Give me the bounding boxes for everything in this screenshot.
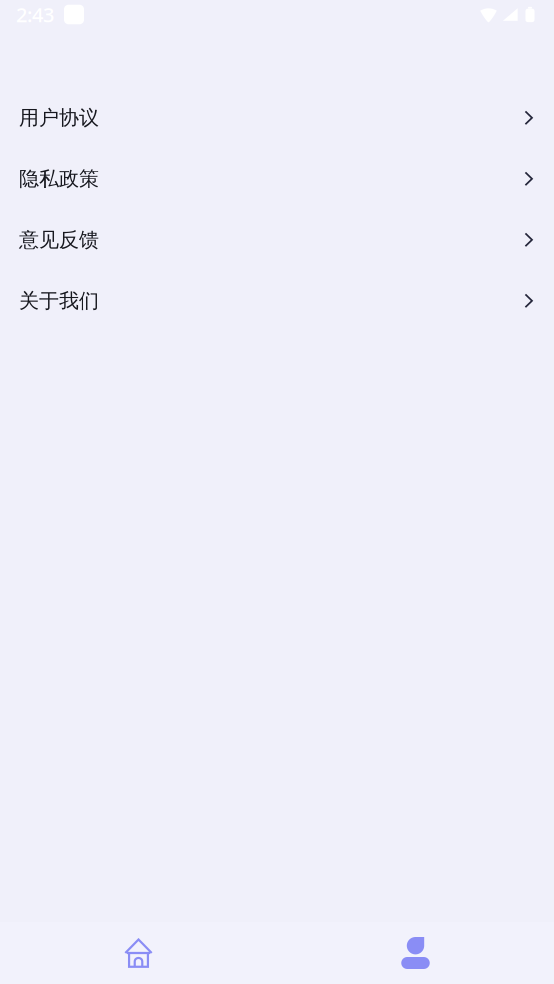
button[interactable]: 隐私政策: [0, 148, 554, 209]
staticText: 用户协议: [19, 105, 99, 130]
staticText: 意见反馈: [19, 227, 99, 252]
button[interactable]: 首页: [0, 922, 277, 984]
button[interactable]: 用户协议: [0, 87, 554, 148]
staticText: 隐私政策: [19, 166, 99, 191]
staticText: 关于我们: [19, 288, 99, 313]
button[interactable]: 我的: [277, 922, 554, 984]
button[interactable]: 关于我们: [0, 270, 554, 331]
staticText: 2:43: [16, 1, 54, 28]
button[interactable]: 意见反馈: [0, 209, 554, 270]
